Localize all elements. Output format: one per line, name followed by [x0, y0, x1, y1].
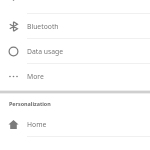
staticText: Data usage: [27, 47, 64, 56]
staticText: Personalization: [9, 100, 51, 107]
button[interactable]: More: [0, 64, 150, 88]
button[interactable]: Data usage: [0, 39, 150, 63]
button[interactable]: Home: [0, 112, 150, 136]
button[interactable]: Wi-Fi: [0, 0, 150, 4]
button[interactable]: Bluetooth: [0, 14, 150, 38]
staticText: Bluetooth: [27, 22, 59, 31]
staticText: More: [27, 72, 44, 81]
staticText: Home: [27, 120, 47, 129]
